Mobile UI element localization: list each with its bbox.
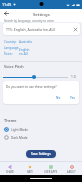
button[interactable]: Pitch slider bbox=[3, 74, 68, 80]
button[interactable]: Clear selection bbox=[71, 25, 79, 33]
button[interactable]: Save Settings bbox=[26, 150, 56, 158]
staticText: Voice: bbox=[4, 52, 13, 56]
staticText: en-AU bbox=[19, 52, 28, 56]
staticText: RATE bbox=[27, 170, 33, 174]
button[interactable]: Yes bbox=[68, 95, 77, 101]
staticText: Settings bbox=[33, 11, 50, 17]
button[interactable]: Country: bbox=[4, 40, 32, 44]
staticText: ABOUT bbox=[67, 170, 76, 174]
staticText: Light Mode bbox=[11, 128, 28, 132]
button[interactable]: USER APPS bbox=[40, 162, 61, 175]
staticText: 1.0 bbox=[71, 75, 76, 79]
staticText: Language: bbox=[4, 46, 19, 54]
staticText: Voice Pitch bbox=[4, 64, 24, 69]
staticText: No bbox=[56, 96, 61, 100]
staticText: USER APPS bbox=[44, 170, 58, 174]
button[interactable]: Dark Mode bbox=[4, 135, 28, 140]
button[interactable]: Back bbox=[0, 9, 13, 18]
staticText: Yes bbox=[70, 96, 75, 100]
button[interactable]: Voice: bbox=[4, 52, 28, 56]
button[interactable]: SHARE bbox=[0, 162, 20, 175]
button[interactable]: RATE bbox=[20, 162, 40, 175]
button[interactable]: Language: bbox=[4, 46, 30, 54]
staticText: Save Settings bbox=[31, 152, 51, 156]
button[interactable]: No bbox=[54, 95, 63, 101]
staticText: Country: bbox=[4, 40, 17, 44]
staticText: Dark Mode bbox=[11, 136, 28, 140]
staticText: Do you want to use these settings? bbox=[6, 85, 57, 89]
staticText: TTS: English, Australia (en-AU) bbox=[6, 27, 56, 32]
button[interactable]: Light Mode bbox=[4, 127, 28, 132]
button[interactable]: ABOUT bbox=[61, 162, 82, 175]
staticText: Search by language, country or voice bbox=[4, 19, 54, 23]
staticText: Theme bbox=[4, 118, 17, 123]
staticText: Australia bbox=[19, 40, 32, 44]
staticText: English bbox=[19, 48, 30, 52]
staticText: SHARE bbox=[6, 170, 15, 174]
staticText: 11:45 bbox=[2, 2, 12, 7]
